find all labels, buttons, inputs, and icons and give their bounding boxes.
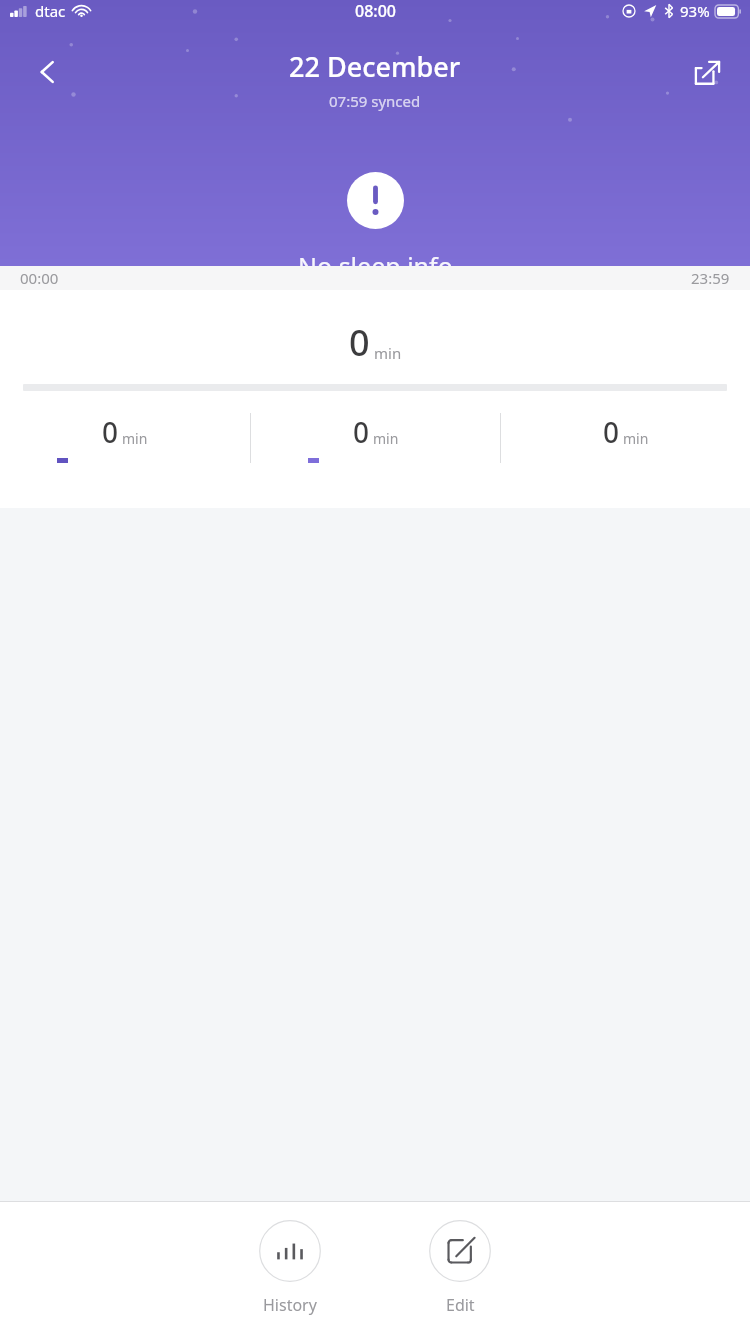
staticText: 0 [349, 318, 370, 367]
button[interactable]: 0 [251, 413, 500, 463]
button[interactable]: Back [22, 46, 74, 98]
other: History [259, 1220, 321, 1282]
staticText: No sleep info [298, 249, 453, 266]
staticText: 23:59 [691, 268, 730, 288]
staticText: History [263, 1294, 317, 1316]
staticText: min [374, 343, 402, 363]
staticText: 22 December [289, 48, 461, 85]
staticText: 00:00 [20, 268, 59, 288]
staticText: 07:59 synced [329, 91, 421, 111]
button[interactable]: Share [682, 48, 732, 98]
staticText: 93% [680, 1, 710, 21]
staticText: 0 [102, 413, 119, 451]
staticText: 0 [603, 413, 620, 451]
button[interactable]: 0 [0, 413, 250, 463]
button[interactable]: Edit [421, 1216, 499, 1320]
staticText: dtac [35, 1, 66, 21]
other: Edit [429, 1220, 491, 1282]
staticText: Edit [446, 1294, 475, 1316]
staticText: 0 [353, 413, 370, 451]
button[interactable]: History [251, 1216, 329, 1320]
staticText: 08:00 [355, 0, 396, 22]
staticText: min [373, 429, 399, 448]
staticText: min [122, 429, 148, 448]
staticText: min [623, 429, 649, 448]
button[interactable]: 0 [501, 413, 750, 463]
